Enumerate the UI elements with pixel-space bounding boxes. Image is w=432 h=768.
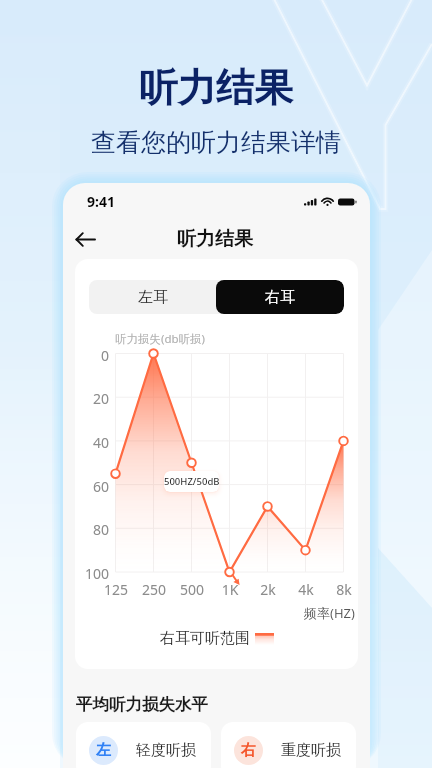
staticText: 4k bbox=[286, 580, 326, 599]
staticText: 500 bbox=[172, 580, 212, 599]
staticText: 轻度听损 bbox=[136, 741, 196, 760]
staticText: 250 bbox=[134, 580, 174, 599]
staticText: 右 bbox=[241, 741, 256, 760]
staticText: 125 bbox=[96, 580, 136, 599]
staticText: 听力损失(db听损) bbox=[115, 331, 206, 347]
staticText: 0 bbox=[75, 346, 109, 365]
button[interactable]: Back bbox=[69, 223, 101, 255]
staticText: 20 bbox=[75, 389, 109, 408]
staticText: 听力结果 bbox=[0, 64, 432, 113]
staticText: 左 bbox=[96, 741, 111, 760]
staticText: 8k bbox=[324, 580, 358, 599]
staticText: 40 bbox=[75, 433, 109, 452]
staticText: 60 bbox=[75, 477, 109, 496]
staticText: 左耳 bbox=[138, 288, 168, 307]
staticText: 1K bbox=[210, 580, 250, 599]
staticText: 听力结果 bbox=[177, 227, 253, 251]
staticText: 查看您的听力结果详情 bbox=[0, 127, 432, 158]
button[interactable]: 左 bbox=[76, 722, 211, 768]
staticText: 500HZ/50dB bbox=[164, 475, 219, 488]
staticText: 80 bbox=[75, 520, 109, 539]
staticText: 平均听力损失水平 bbox=[76, 694, 208, 715]
staticText: 2k bbox=[248, 580, 288, 599]
button[interactable]: 左耳 bbox=[89, 280, 216, 314]
staticText: 右耳 bbox=[265, 288, 295, 307]
staticText: 100 bbox=[75, 564, 109, 583]
button[interactable]: 右 bbox=[221, 722, 356, 768]
staticText: 重度听损 bbox=[281, 741, 341, 760]
staticText: 右耳可听范围 bbox=[160, 629, 250, 648]
button[interactable]: 右耳 bbox=[216, 280, 344, 314]
staticText: 9:41 bbox=[87, 192, 115, 211]
staticText: 频率(HZ) bbox=[304, 604, 355, 622]
